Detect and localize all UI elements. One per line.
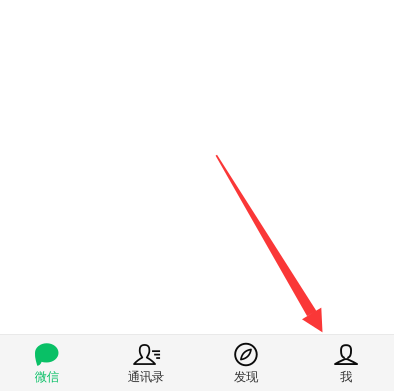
staticText: 我 [340,369,352,385]
button[interactable]: 微信 [0,335,98,391]
staticText: 微信 [35,369,59,385]
staticText: 通讯录 [128,369,164,385]
staticText: 发现 [234,369,258,385]
button[interactable]: 通讯录 [98,335,197,391]
button[interactable]: 发现 [197,335,295,391]
button[interactable]: 我 [295,335,394,391]
